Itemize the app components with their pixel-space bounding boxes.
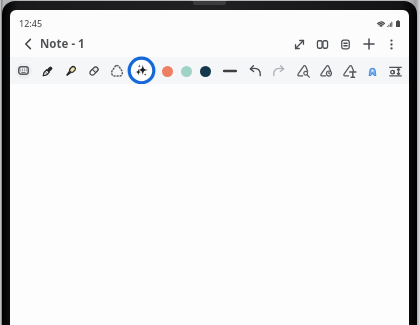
button[interactable]: Text size	[384, 59, 407, 83]
staticText: 12:45	[19, 17, 43, 29]
button[interactable]: Colour	[158, 59, 177, 83]
button[interactable]: Smart search	[292, 59, 315, 83]
button[interactable]: Redo	[267, 59, 290, 83]
button[interactable]: Highlighter	[59, 59, 82, 83]
button[interactable]: Undo	[244, 59, 267, 83]
button[interactable]: Select	[105, 59, 128, 83]
button[interactable]: Colour	[177, 59, 196, 83]
button[interactable]: More options	[380, 34, 403, 54]
button[interactable]: Eraser	[82, 59, 105, 83]
staticText: Note - 1	[40, 36, 85, 52]
button[interactable]: Convert to text	[338, 59, 361, 83]
button[interactable]: Back	[17, 34, 38, 54]
button[interactable]: AI assist	[361, 59, 384, 83]
button[interactable]: Thickness	[218, 59, 241, 83]
button[interactable]: Pen	[36, 59, 59, 83]
button[interactable]: Notes list	[334, 34, 357, 54]
button[interactable]: Reading view	[311, 34, 334, 54]
button[interactable]: Add	[357, 34, 380, 54]
button[interactable]: Keyboard	[13, 60, 34, 81]
button[interactable]: AI tools	[127, 56, 156, 85]
button[interactable]: Auto shape	[315, 59, 338, 83]
button[interactable]: Colour	[196, 59, 215, 83]
button[interactable]: Expand	[288, 34, 311, 54]
